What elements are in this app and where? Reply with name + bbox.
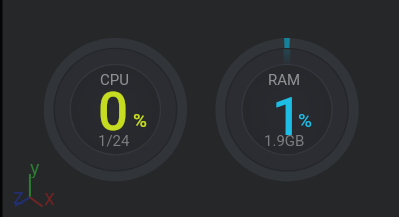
staticText: 1/24 <box>98 132 130 150</box>
staticText: y <box>30 156 40 178</box>
button[interactable] <box>215 38 359 182</box>
staticText: CPU <box>100 71 129 89</box>
staticText: % <box>298 109 312 131</box>
staticText: z <box>13 184 24 210</box>
staticText: RAM <box>268 71 301 89</box>
staticText: 0 <box>98 81 129 143</box>
button[interactable] <box>43 38 187 182</box>
staticText: 1 <box>272 86 303 148</box>
staticText: % <box>133 109 147 131</box>
staticText: 1.9GB <box>264 132 305 150</box>
staticText: x <box>44 185 55 211</box>
